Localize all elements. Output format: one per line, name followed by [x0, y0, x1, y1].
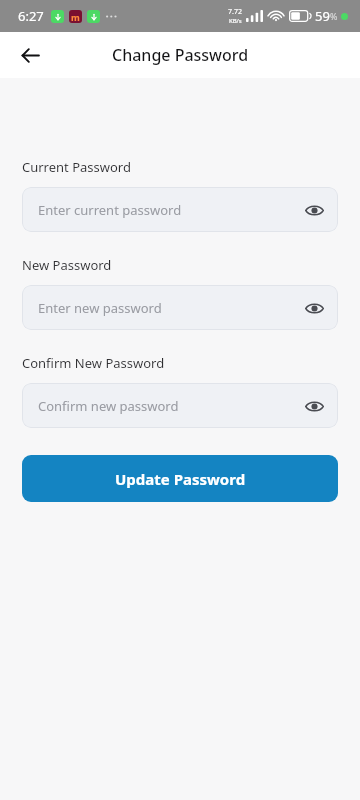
staticText: Confirm new password: [38, 397, 179, 415]
button[interactable]: Update Password: [22, 455, 338, 502]
button[interactable]: Confirm new password: [22, 383, 338, 428]
button[interactable]: Back: [12, 37, 48, 73]
staticText: %: [330, 10, 338, 22]
staticText: Confirm New Password: [22, 354, 165, 372]
staticText: Change Password: [112, 44, 249, 66]
staticText: New Password: [22, 256, 112, 274]
staticText: m: [71, 11, 80, 23]
button[interactable]: Show password: [298, 292, 330, 324]
staticText: KB/s: [229, 17, 242, 25]
staticText: 6:27: [18, 7, 44, 25]
button[interactable]: Show password: [298, 390, 330, 422]
button[interactable]: Enter current password: [22, 187, 338, 232]
staticText: Enter new password: [38, 299, 162, 317]
button[interactable]: Show password: [298, 194, 330, 226]
staticText: Current Password: [22, 158, 131, 176]
staticText: Enter current password: [38, 201, 182, 219]
button[interactable]: Enter new password: [22, 285, 338, 330]
staticText: 59: [315, 7, 330, 25]
staticText: Update Password: [115, 469, 246, 489]
staticText: 7.72: [228, 7, 242, 17]
